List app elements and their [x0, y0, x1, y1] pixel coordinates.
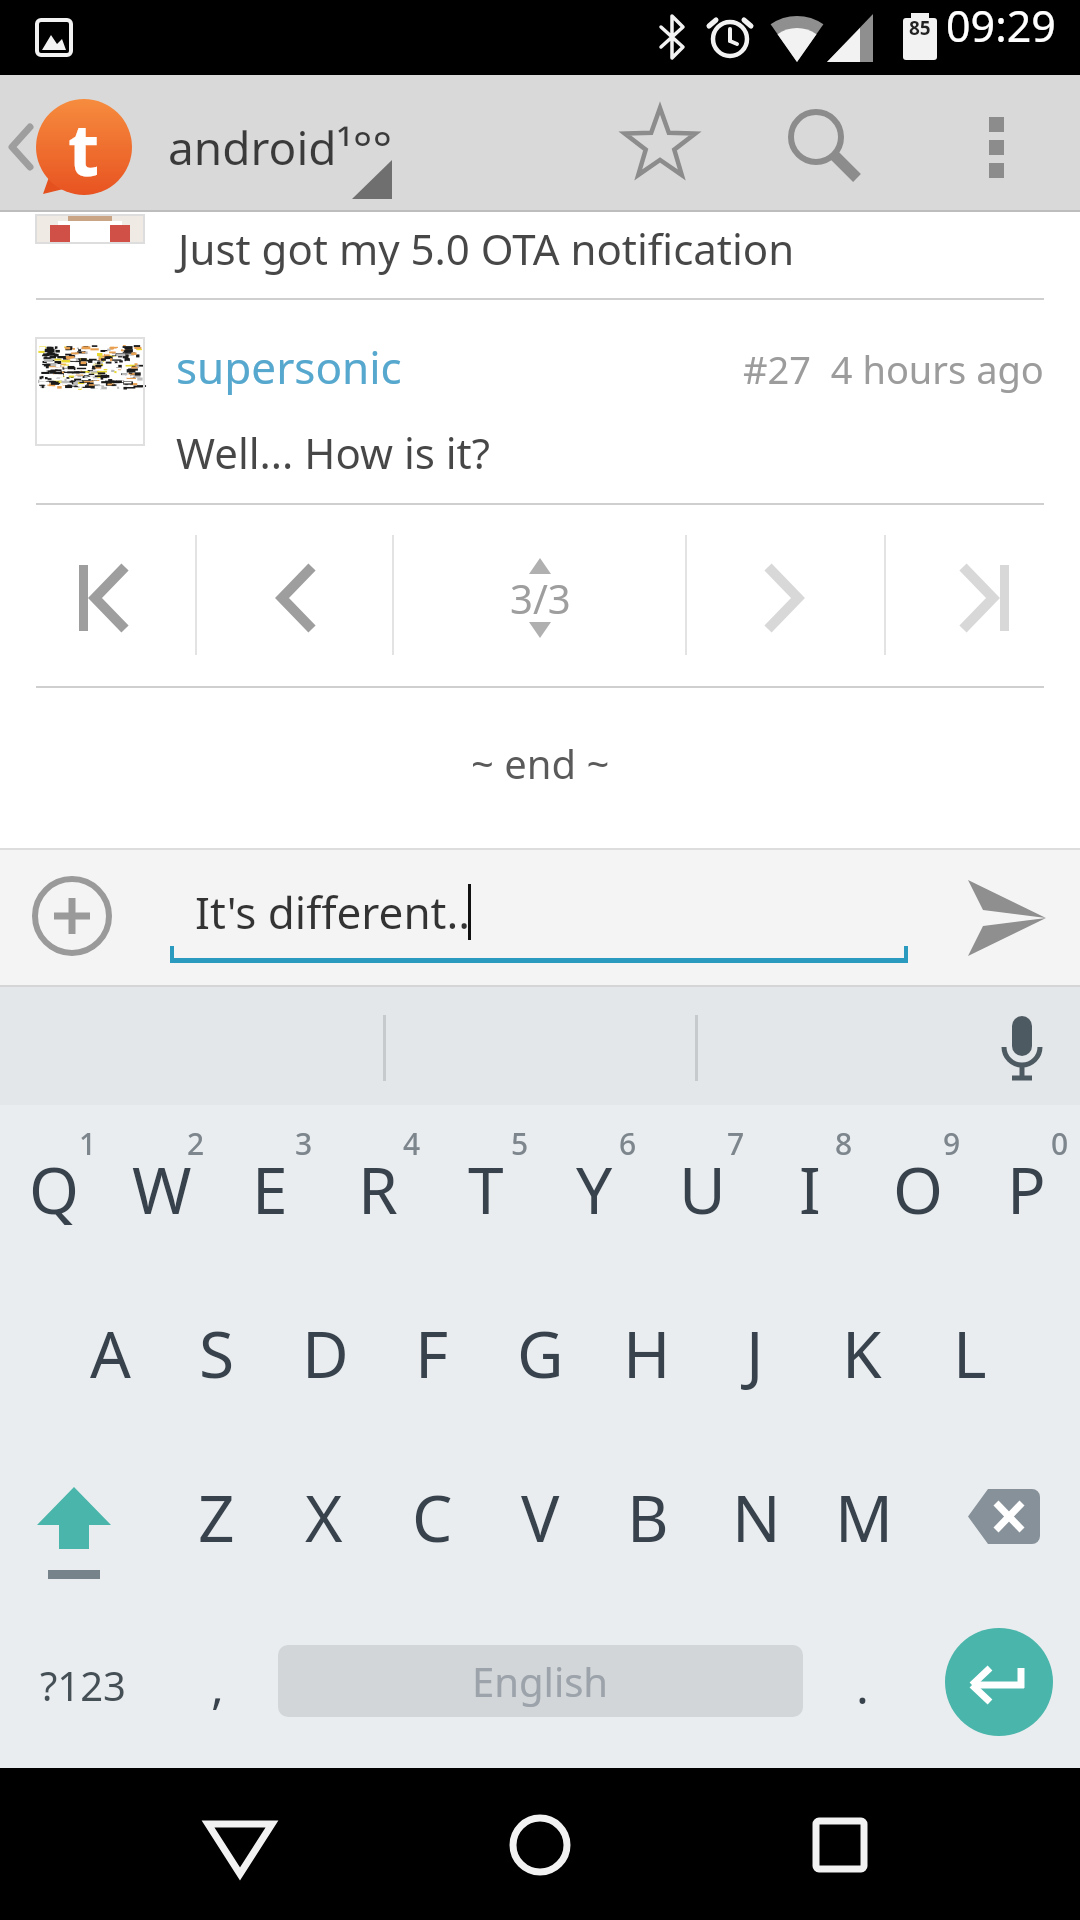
button[interactable]: Q: [0, 1114, 108, 1264]
staticText: K: [842, 1310, 882, 1397]
staticText: ,: [211, 1653, 224, 1718]
button[interactable]: ?123: [10, 1615, 155, 1755]
button[interactable]: W: [108, 1114, 216, 1264]
button[interactable]: t: [36, 99, 132, 195]
button[interactable]: [610, 95, 710, 195]
button[interactable]: [0, 505, 216, 685]
button[interactable]: Y: [540, 1114, 648, 1264]
button[interactable]: Z: [162, 1442, 270, 1592]
staticText: supersonic: [176, 337, 402, 397]
staticText: 3/3: [510, 571, 571, 625]
staticText: 9: [943, 1123, 961, 1164]
staticText: B: [627, 1474, 669, 1561]
button[interactable]: [150, 105, 410, 195]
button[interactable]: T: [432, 1114, 540, 1264]
button[interactable]: L: [916, 1278, 1024, 1428]
button[interactable]: X: [270, 1442, 378, 1592]
button[interactable]: [648, 505, 864, 685]
staticText: 5: [511, 1123, 529, 1164]
button[interactable]: F: [378, 1278, 486, 1428]
staticText: 85: [909, 15, 931, 41]
staticText: I: [799, 1146, 821, 1233]
button[interactable]: [216, 505, 432, 685]
button[interactable]: [0, 212, 1080, 296]
button[interactable]: I: [756, 1114, 864, 1264]
staticText: U: [679, 1146, 726, 1233]
button[interactable]: K: [808, 1278, 916, 1428]
button[interactable]: O: [864, 1114, 972, 1264]
button[interactable]: H: [593, 1278, 701, 1428]
button[interactable]: [864, 505, 1080, 685]
button[interactable]: [720, 985, 1060, 1105]
button[interactable]: [945, 868, 1060, 968]
button[interactable]: D: [271, 1278, 379, 1428]
button[interactable]: ,: [160, 1615, 275, 1755]
button[interactable]: [160, 1768, 320, 1920]
staticText: R: [358, 1146, 398, 1233]
button[interactable]: [360, 985, 700, 1105]
button[interactable]: A: [56, 1278, 164, 1428]
staticText: Well... How is it?: [176, 424, 490, 481]
staticText: 0: [1051, 1123, 1069, 1164]
staticText: English: [472, 1654, 609, 1708]
staticText: It's different..: [195, 882, 471, 942]
button[interactable]: G: [486, 1278, 594, 1428]
button[interactable]: [150, 322, 1044, 512]
button[interactable]: V: [486, 1442, 594, 1592]
staticText: G: [517, 1310, 564, 1397]
staticText: Y: [576, 1146, 613, 1233]
staticText: J: [746, 1310, 764, 1397]
staticText: ?123: [40, 1658, 126, 1712]
staticText: C: [412, 1474, 453, 1561]
staticText: D: [302, 1310, 349, 1397]
button[interactable]: P: [972, 1114, 1080, 1264]
button[interactable]: English: [278, 1645, 803, 1717]
staticText: t: [68, 99, 100, 195]
staticText: W: [132, 1146, 192, 1233]
button[interactable]: J: [701, 1278, 809, 1428]
button[interactable]: [760, 1768, 920, 1920]
button[interactable]: [20, 864, 124, 968]
staticText: 2: [187, 1123, 205, 1164]
button[interactable]: E: [216, 1114, 324, 1264]
staticText: M: [835, 1474, 894, 1561]
button[interactable]: [10, 1445, 140, 1590]
button[interactable]: S: [163, 1278, 271, 1428]
staticText: 3: [295, 1123, 313, 1164]
button[interactable]: M: [810, 1442, 918, 1592]
staticText: A: [90, 1310, 131, 1397]
staticText: .: [856, 1653, 869, 1718]
staticText: 6: [619, 1123, 637, 1164]
button[interactable]: [766, 95, 866, 195]
button[interactable]: [432, 505, 648, 685]
staticText: H: [623, 1310, 671, 1397]
button[interactable]: [460, 1768, 620, 1920]
button[interactable]: [150, 858, 930, 974]
staticText: E: [252, 1146, 288, 1233]
staticText: ~ end ~: [471, 736, 610, 790]
button[interactable]: .: [805, 1615, 920, 1755]
staticText: T: [468, 1146, 504, 1233]
staticText: L: [953, 1310, 987, 1397]
button[interactable]: U: [648, 1114, 756, 1264]
staticText: Q: [29, 1146, 79, 1233]
button[interactable]: [0, 117, 36, 177]
button[interactable]: [940, 1457, 1070, 1602]
button[interactable]: C: [378, 1442, 486, 1592]
button[interactable]: [975, 1000, 1070, 1095]
button[interactable]: [945, 1628, 1053, 1736]
staticText: android¹°°: [168, 116, 393, 179]
staticText: O: [893, 1146, 943, 1233]
staticText: N: [732, 1474, 781, 1561]
staticText: 4: [403, 1123, 421, 1164]
button[interactable]: B: [594, 1442, 702, 1592]
staticText: P: [1007, 1146, 1046, 1233]
button[interactable]: R: [324, 1114, 432, 1264]
staticText: Just got my 5.0 OTA notification: [178, 220, 795, 277]
staticText: 09:29: [946, 0, 1056, 55]
button[interactable]: [946, 95, 1046, 195]
staticText: 1: [79, 1123, 97, 1164]
staticText: V: [521, 1474, 560, 1561]
button[interactable]: N: [702, 1442, 810, 1592]
